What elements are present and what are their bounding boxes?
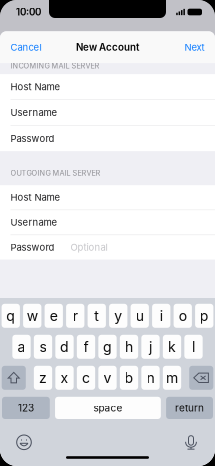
button[interactable]: Next <box>176 35 215 60</box>
staticText: Host Name <box>10 192 60 203</box>
staticText: t <box>94 307 99 324</box>
staticText: e <box>50 307 58 324</box>
button[interactable]: Dictation <box>181 434 201 452</box>
button[interactable]: m <box>163 366 181 390</box>
button[interactable]: y <box>109 304 127 328</box>
staticText: Username <box>10 107 57 118</box>
button[interactable]: p <box>195 304 213 328</box>
button[interactable]: x <box>55 366 74 390</box>
staticText: m <box>166 369 178 386</box>
staticText: h <box>125 338 133 355</box>
button[interactable]: h <box>120 335 138 359</box>
button[interactable]: b <box>120 366 138 390</box>
staticText: f <box>83 338 88 355</box>
staticText: x <box>60 369 68 386</box>
staticText: q <box>6 307 15 324</box>
button[interactable]: e <box>45 304 63 328</box>
staticText: r <box>73 307 78 324</box>
button[interactable]: space <box>55 397 161 419</box>
staticText: Next <box>184 42 204 53</box>
button[interactable]: 123 <box>2 397 50 419</box>
staticText: w <box>27 307 38 324</box>
staticText: Password <box>10 242 54 253</box>
button[interactable]: w <box>23 304 41 328</box>
button[interactable]: Username <box>0 210 215 234</box>
button[interactable]: s <box>34 335 52 359</box>
staticText: o <box>179 307 187 324</box>
button[interactable]: Password <box>0 235 215 259</box>
button[interactable]: t <box>88 304 106 328</box>
staticText: return <box>175 402 204 414</box>
button[interactable]: n <box>141 366 160 390</box>
staticText: Cancel <box>10 42 41 53</box>
staticText: n <box>146 369 154 386</box>
staticText: y <box>114 307 122 324</box>
button[interactable]: q <box>2 304 20 328</box>
button[interactable]: Delete <box>189 366 213 390</box>
staticText: Optional <box>70 242 107 253</box>
button[interactable]: c <box>77 366 95 390</box>
staticText: INCOMING MAIL SERVER <box>10 61 99 70</box>
button[interactable]: g <box>98 335 117 359</box>
staticText: l <box>192 338 195 355</box>
staticText: z <box>39 369 47 386</box>
button[interactable]: r <box>66 304 84 328</box>
staticText: b <box>124 369 133 386</box>
staticText: Username <box>10 217 57 228</box>
button[interactable]: j <box>141 335 160 359</box>
staticText: c <box>82 369 90 386</box>
staticText: space <box>93 402 122 414</box>
button[interactable]: Username <box>0 100 215 125</box>
staticText: a <box>17 338 25 355</box>
staticText: d <box>60 338 69 355</box>
button[interactable]: Password <box>0 126 215 151</box>
button[interactable]: l <box>184 335 203 359</box>
staticText: OUTGOING MAIL SERVER <box>10 169 100 178</box>
button[interactable]: return <box>166 397 213 419</box>
staticText: 123 <box>18 402 34 414</box>
button[interactable]: Emoji keyboard <box>14 434 34 452</box>
button[interactable]: d <box>55 335 74 359</box>
button[interactable]: z <box>34 366 52 390</box>
staticText: 10:00 <box>16 6 41 18</box>
button[interactable]: Shift <box>2 366 26 390</box>
button[interactable]: k <box>163 335 181 359</box>
button[interactable]: u <box>131 304 149 328</box>
staticText: k <box>168 338 176 355</box>
button[interactable]: v <box>98 366 117 390</box>
button[interactable]: Host Name <box>0 74 215 99</box>
staticText: s <box>39 338 46 355</box>
staticText: New Account <box>76 41 139 53</box>
staticText: j <box>149 338 152 355</box>
button[interactable]: a <box>12 335 31 359</box>
staticText: Host Name <box>10 81 60 92</box>
button[interactable]: Host Name <box>0 185 215 210</box>
staticText: g <box>103 338 112 355</box>
staticText: Password <box>10 133 54 144</box>
button[interactable]: Cancel <box>0 35 49 60</box>
button[interactable]: o <box>174 304 192 328</box>
staticText: p <box>200 307 209 324</box>
staticText: v <box>103 369 111 386</box>
staticText: u <box>136 307 144 324</box>
button[interactable]: f <box>77 335 95 359</box>
button[interactable]: i <box>152 304 170 328</box>
staticText: i <box>160 307 163 324</box>
